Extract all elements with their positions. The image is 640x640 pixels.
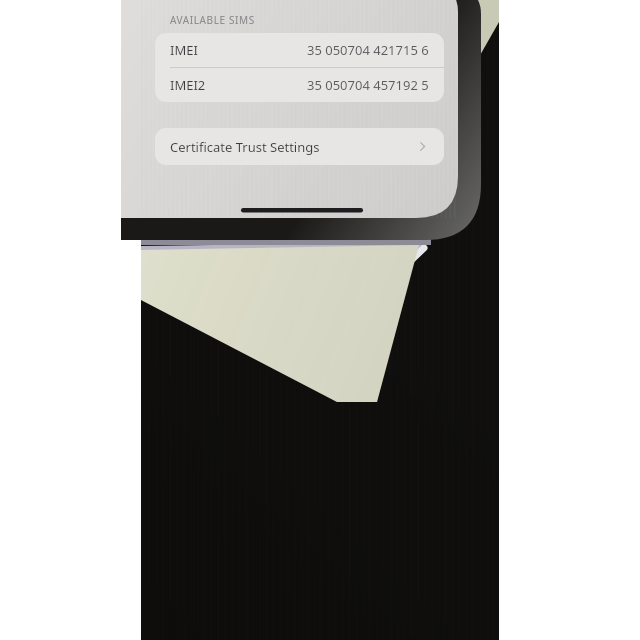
- staticText: 35 050704 421715 6: [307, 41, 429, 59]
- staticText: IMEI: [170, 41, 198, 59]
- button[interactable]: IMEI: [155, 33, 444, 67]
- other: Open: [416, 140, 429, 153]
- staticText: AVAILABLE SIMS: [170, 13, 255, 27]
- button[interactable]: Certificate Trust Settings: [155, 128, 444, 165]
- staticText: Certificate Trust Settings: [170, 138, 320, 156]
- staticText: 35 050704 457192 5: [307, 76, 429, 94]
- button[interactable]: IMEI2: [155, 68, 444, 102]
- staticText: IMEI2: [170, 76, 206, 94]
